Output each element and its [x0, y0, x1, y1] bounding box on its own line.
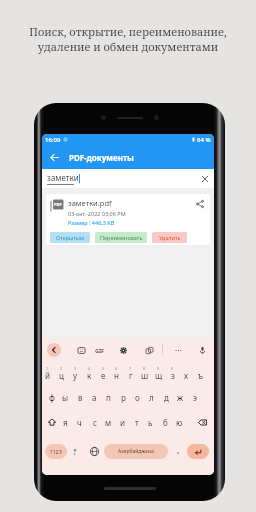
- button[interactable]: я: [59, 409, 72, 435]
- button[interactable]: Back: [47, 150, 62, 165]
- button[interactable]: 1: [42, 361, 54, 385]
- staticText: 0: [171, 366, 174, 371]
- staticText: Переименовать: [100, 234, 143, 241]
- button[interactable]: 2: [55, 361, 68, 385]
- staticText: б: [163, 417, 168, 428]
- staticText: Поиск, открытие, переименование, удалени…: [29, 24, 227, 54]
- button[interactable]: о: [131, 385, 144, 409]
- staticText: ь: [148, 417, 153, 428]
- staticText: Размер : 446,3 KB: [68, 219, 115, 226]
- staticText: Удалить: [159, 234, 181, 241]
- staticText: 16:09: [45, 136, 61, 144]
- button[interactable]: ф: [45, 385, 58, 409]
- button[interactable]: ы: [59, 385, 72, 409]
- button[interactable]: 3: [69, 361, 82, 385]
- staticText: Открытым: [56, 234, 85, 241]
- button[interactable]: т: [130, 409, 143, 435]
- button[interactable]: Enter: [187, 444, 209, 459]
- button[interactable]: а: [88, 385, 101, 409]
- button[interactable]: Comma: [70, 444, 80, 459]
- button[interactable]: Backspace: [196, 409, 209, 435]
- staticText: г: [129, 370, 133, 381]
- button[interactable]: л: [145, 385, 158, 409]
- button[interactable]: м: [102, 409, 115, 435]
- staticText: й: [45, 370, 50, 381]
- staticText: 64 %: [197, 136, 211, 144]
- staticText: 5: [102, 366, 105, 371]
- staticText: 2: [60, 366, 63, 371]
- button[interactable]: Открытым: [50, 232, 90, 243]
- staticText: м: [105, 417, 112, 428]
- staticText: ы: [62, 392, 69, 403]
- button[interactable]: Shift: [45, 409, 58, 435]
- button[interactable]: 9: [152, 361, 165, 385]
- staticText: 3: [74, 366, 77, 371]
- staticText: ц: [59, 370, 64, 381]
- button[interactable]: PDF: [46, 194, 210, 245]
- staticText: заметки.pdf: [68, 198, 112, 208]
- staticText: PDF: [54, 202, 62, 207]
- button[interactable]: Period: [173, 444, 183, 459]
- button[interactable]: п: [102, 385, 115, 409]
- button[interactable]: 5: [97, 361, 110, 385]
- staticText: 4: [88, 366, 91, 371]
- staticText: 8: [143, 366, 146, 371]
- staticText: 6: [115, 366, 118, 371]
- button[interactable]: х: [180, 361, 193, 385]
- button[interactable]: ь: [144, 409, 157, 435]
- staticText: ш: [141, 370, 149, 381]
- staticText: ф: [49, 392, 55, 403]
- button[interactable]: ?123: [45, 444, 67, 459]
- staticText: ъ: [198, 370, 203, 381]
- staticText: щ: [155, 370, 163, 381]
- button[interactable]: sticker: [75, 344, 87, 356]
- staticText: с: [93, 417, 97, 428]
- button[interactable]: в: [74, 385, 87, 409]
- staticText: Азербайджана: [118, 448, 154, 455]
- staticText: н: [114, 370, 119, 381]
- button[interactable]: и: [116, 409, 129, 435]
- button[interactable]: ю: [173, 409, 186, 435]
- staticText: е: [101, 370, 106, 381]
- button[interactable]: Clear search: [199, 173, 210, 184]
- button[interactable]: р: [117, 385, 130, 409]
- button[interactable]: 4: [83, 361, 96, 385]
- button[interactable]: dots: [172, 344, 184, 356]
- staticText: ч: [77, 417, 82, 428]
- button[interactable]: 0: [166, 361, 179, 385]
- staticText: я: [63, 417, 68, 428]
- staticText: и: [120, 417, 125, 428]
- button[interactable]: 8: [138, 361, 151, 385]
- staticText: з: [171, 370, 175, 381]
- button[interactable]: ъ: [194, 361, 207, 385]
- button[interactable]: gear: [117, 344, 129, 356]
- staticText: ж: [177, 392, 184, 403]
- staticText: ?123: [50, 448, 62, 455]
- staticText: л: [149, 392, 154, 403]
- button[interactable]: б: [159, 409, 172, 435]
- staticText: GIF: [95, 347, 105, 354]
- button[interactable]: Collapse toolbar: [47, 343, 61, 357]
- button[interactable]: ж: [174, 385, 187, 409]
- button[interactable]: э: [188, 385, 201, 409]
- button[interactable]: Share: [194, 198, 206, 210]
- button[interactable]: с: [88, 409, 101, 435]
- button[interactable]: 6: [110, 361, 123, 385]
- staticText: заметки: [47, 172, 79, 183]
- staticText: ю: [176, 417, 183, 428]
- button[interactable]: Change language: [87, 444, 101, 459]
- button[interactable]: Азербайджана: [104, 444, 168, 459]
- button[interactable]: mic: [196, 344, 208, 356]
- staticText: а: [92, 392, 97, 403]
- button[interactable]: image: [143, 344, 155, 356]
- button[interactable]: ч: [73, 409, 86, 435]
- button[interactable]: 7: [124, 361, 137, 385]
- staticText: р: [121, 392, 126, 403]
- button[interactable]: Удалить: [152, 232, 187, 243]
- staticText: 9: [157, 366, 160, 371]
- staticText: к: [87, 370, 92, 381]
- button[interactable]: GIF: [94, 344, 106, 356]
- button[interactable]: д: [160, 385, 173, 409]
- staticText: PDF-документы: [69, 152, 134, 163]
- button[interactable]: Переименовать: [95, 232, 147, 243]
